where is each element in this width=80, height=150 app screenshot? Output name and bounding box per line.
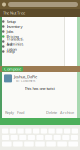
staticText: Archive [60,110,74,115]
staticText: Joshua_DaPie [14,74,37,79]
staticText: Transactions [6,36,23,47]
staticText: Compose [4,66,21,72]
staticText: Jobs [6,29,13,34]
staticText: Administration [6,41,23,52]
staticText: Pricing [6,34,18,39]
staticText: Help [6,49,14,54]
staticText: Setup [6,19,15,24]
staticText: to: Customers [16,79,35,83]
staticText: Inventory [6,24,22,29]
staticText: The Nut Tree [3,10,25,16]
staticText: Fwd [17,110,24,115]
staticText: This has one twist [24,86,54,91]
staticText: Delete [46,110,57,115]
staticText: Reply [5,110,14,115]
